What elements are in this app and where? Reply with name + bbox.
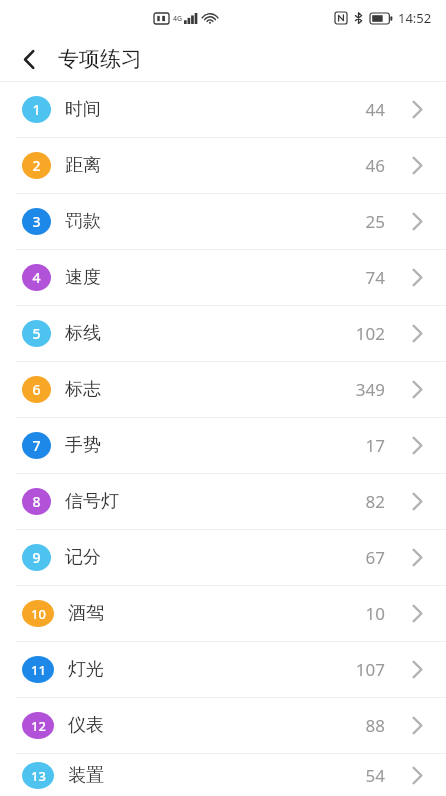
staticText: 67 (365, 546, 385, 569)
staticText: 102 (355, 322, 385, 345)
staticText: 1 (32, 100, 41, 119)
staticText: 标志 (65, 378, 101, 401)
staticText: 13 (31, 767, 46, 785)
staticText: 10 (31, 605, 46, 623)
staticText: 11 (31, 661, 46, 679)
staticText: 酒驾 (68, 602, 104, 625)
staticText: 专项练习 (58, 46, 142, 72)
button[interactable]: 7 (0, 418, 446, 473)
staticText: 12 (31, 717, 46, 735)
button[interactable]: 12 (0, 698, 446, 753)
staticText: 46 (365, 154, 385, 177)
staticText: 3 (32, 212, 41, 231)
staticText: 灯光 (68, 658, 104, 681)
button[interactable]: 10 (0, 586, 446, 641)
staticText: 7 (32, 436, 41, 455)
button[interactable]: 4 (0, 250, 446, 305)
staticText: 82 (365, 490, 385, 513)
staticText: 6 (32, 380, 41, 399)
staticText: 14:52 (398, 9, 432, 27)
button[interactable]: 返回 (10, 40, 48, 78)
staticText: 标线 (65, 322, 101, 345)
button[interactable]: 11 (0, 642, 446, 697)
staticText: 速度 (65, 266, 101, 289)
staticText: 仪表 (68, 714, 104, 737)
staticText: 8 (32, 492, 41, 511)
staticText: 25 (365, 210, 385, 233)
staticText: 4G (173, 14, 183, 24)
staticText: 74 (365, 266, 385, 289)
button[interactable]: 13 (0, 754, 446, 796)
staticText: 2 (32, 156, 41, 175)
staticText: 10 (365, 602, 385, 625)
staticText: 54 (365, 764, 385, 787)
staticText: 349 (355, 378, 385, 401)
staticText: 9 (32, 548, 41, 567)
staticText: 17 (365, 434, 385, 457)
staticText: 记分 (65, 546, 101, 569)
staticText: 手势 (65, 434, 101, 457)
button[interactable]: 5 (0, 306, 446, 361)
staticText: 88 (365, 714, 385, 737)
button[interactable]: 3 (0, 194, 446, 249)
staticText: 107 (355, 658, 385, 681)
button[interactable]: 1 (0, 82, 446, 137)
button[interactable]: 8 (0, 474, 446, 529)
button[interactable]: 2 (0, 138, 446, 193)
staticText: 罚款 (65, 210, 101, 233)
button[interactable]: 6 (0, 362, 446, 417)
staticText: 时间 (65, 98, 101, 121)
staticText: 装置 (68, 764, 104, 787)
staticText: 44 (365, 98, 385, 121)
staticText: 4 (32, 268, 41, 287)
button[interactable]: 9 (0, 530, 446, 585)
staticText: 信号灯 (65, 490, 119, 513)
staticText: 距离 (65, 154, 101, 177)
staticText: 5 (32, 324, 41, 343)
